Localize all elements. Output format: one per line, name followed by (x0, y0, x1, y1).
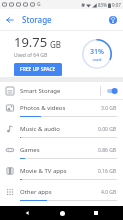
staticText: Music & audio (20, 125, 98, 133)
button[interactable]: FREE UP SPACE (14, 63, 62, 76)
staticText: 0.00 GB (98, 126, 117, 133)
staticText: Games (20, 146, 98, 154)
staticText: 4.0 GB (101, 189, 117, 196)
button[interactable]: Back (3, 13, 17, 27)
staticText: FREE UP SPACE (20, 66, 56, 73)
button[interactable]: Help (106, 13, 120, 27)
staticText: Storage (22, 14, 52, 25)
staticText: 0.16 GB (98, 168, 117, 175)
staticText: 31% (90, 47, 104, 57)
staticText: 0.86 GB (98, 147, 117, 154)
staticText: 19.75 (14, 33, 48, 51)
button[interactable]: Music & audio (0, 121, 123, 142)
staticText: Used of 64 GB (14, 52, 48, 59)
button[interactable]: Back (20, 206, 34, 220)
button[interactable]: Movie & TV apps (0, 163, 123, 184)
button[interactable]: Recent apps (89, 206, 103, 220)
button[interactable]: Games (0, 142, 123, 163)
staticText: 3.0 GB (101, 105, 117, 112)
button[interactable]: Smart Storage (0, 82, 123, 99)
button[interactable]: Other apps (0, 184, 123, 205)
staticText: Movie & TV apps (20, 167, 98, 175)
staticText: 83% (98, 2, 107, 8)
button[interactable]: Home (55, 206, 69, 220)
staticText: used (92, 57, 102, 62)
staticText: G (37, 1, 41, 8)
staticText: Photos & videos (20, 104, 101, 112)
staticText: 9:07 (112, 2, 121, 8)
button[interactable]: Photos & videos (0, 100, 123, 121)
staticText: GB (50, 39, 62, 50)
button[interactable]: Smart Storage toggle (106, 86, 118, 96)
staticText: Other apps (20, 188, 101, 196)
staticText: Smart Storage (20, 87, 100, 95)
